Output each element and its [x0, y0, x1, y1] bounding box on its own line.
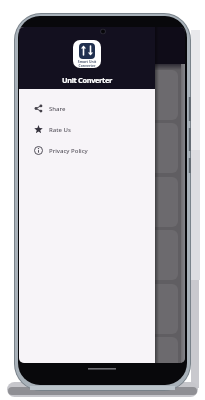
staticText: Unit Converter [19, 75, 155, 85]
staticText: Share [49, 105, 66, 113]
button[interactable]: Rate Us [19, 120, 155, 139]
staticText: Rate Us [49, 126, 71, 134]
staticText: Smart Unit [73, 59, 101, 64]
staticText: Privacy Policy [49, 147, 88, 155]
button[interactable]: Privacy Policy [19, 141, 155, 160]
button[interactable]: Share [19, 99, 155, 118]
staticText: Converter [73, 63, 101, 68]
button[interactable]: Smart Unit [73, 40, 101, 68]
